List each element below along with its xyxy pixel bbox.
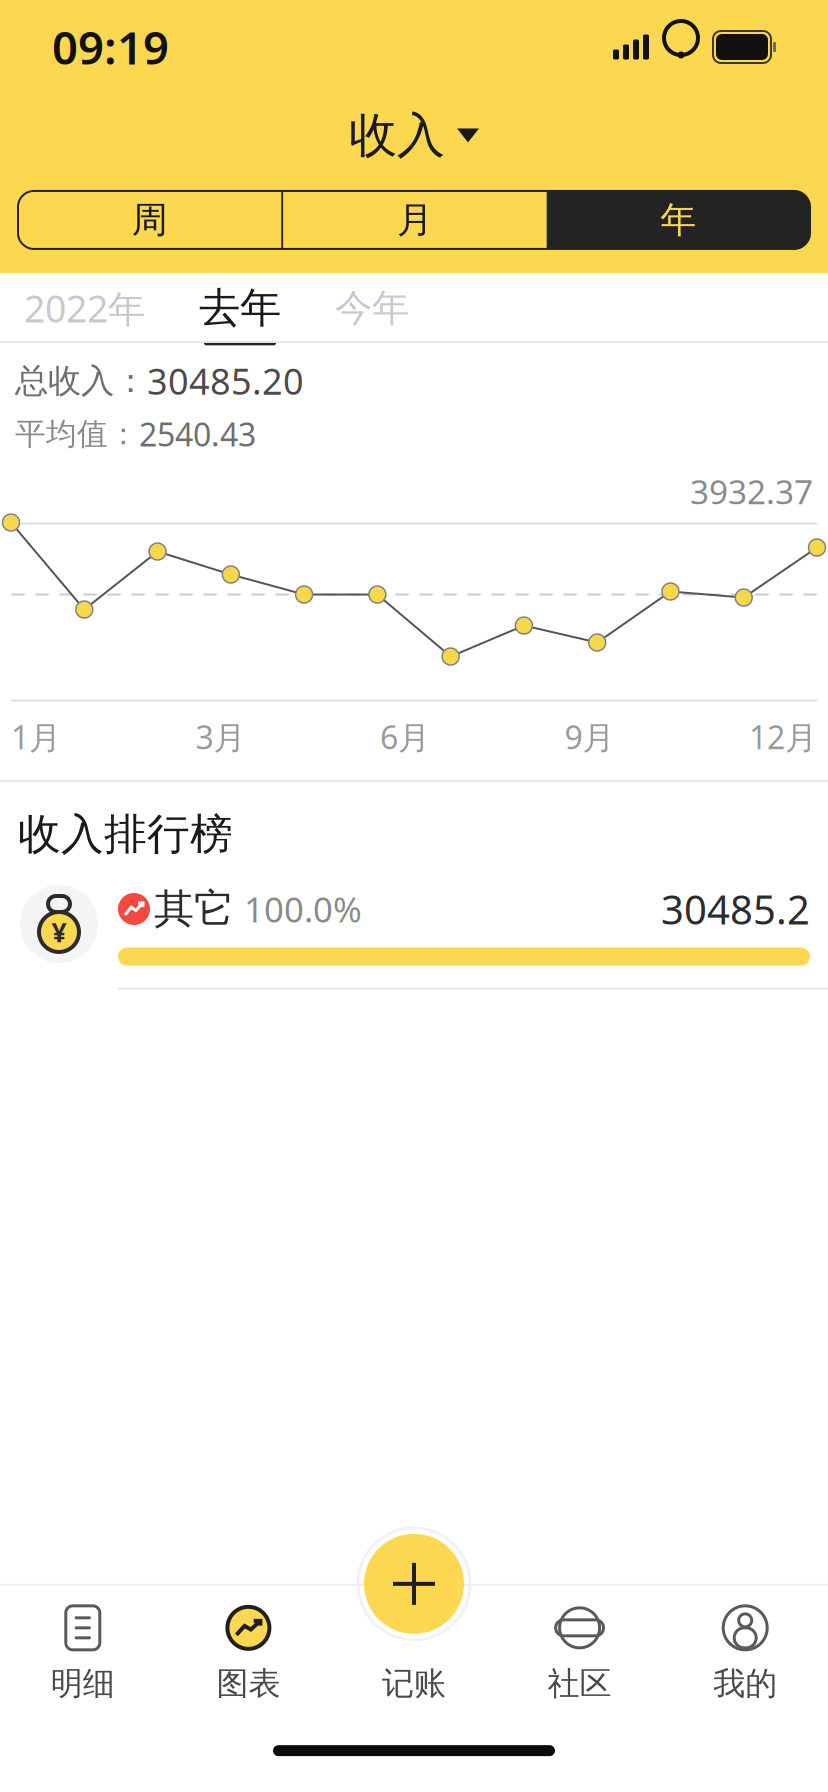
staticText: 我的 [713, 1664, 777, 1703]
staticText: 年 [660, 198, 696, 242]
staticText: 100.0% [244, 886, 362, 932]
staticText: 收入 [349, 106, 445, 165]
staticText: 3932.37 [690, 469, 813, 514]
staticText: 2022年 [24, 283, 145, 333]
button[interactable]: 今年 [325, 271, 419, 343]
staticText: ¥ [51, 914, 66, 950]
button[interactable]: 收入 [335, 98, 493, 173]
staticText: 去年 [199, 283, 281, 333]
staticText: 3月 [195, 715, 245, 758]
button[interactable]: 图表 [166, 1586, 331, 1711]
staticText: 明细 [51, 1664, 115, 1703]
staticText: 其它 [154, 884, 234, 933]
button[interactable]: 2022年 [14, 269, 155, 345]
staticText: 周 [132, 198, 168, 242]
staticText: 月 [397, 198, 433, 242]
button[interactable]: 月 [283, 191, 547, 249]
button[interactable]: 记账 [331, 1586, 497, 1711]
staticText: 2540.43 [139, 413, 256, 455]
staticText: 收入排行榜 [18, 808, 233, 860]
staticText: 记账 [382, 1664, 446, 1703]
button[interactable]: 年 [547, 191, 810, 249]
button[interactable]: 周 [18, 191, 281, 249]
staticText: 6月 [380, 715, 430, 758]
staticText: 图表 [216, 1664, 280, 1703]
staticText: 今年 [335, 285, 409, 331]
button[interactable]: 明细 [0, 1586, 166, 1711]
staticText: 1月 [11, 715, 61, 758]
staticText: 平均值： [15, 415, 139, 453]
button[interactable]: 我的 [662, 1586, 828, 1711]
button[interactable]: 记账 [358, 1528, 470, 1640]
staticText: 总收入： [15, 360, 147, 401]
staticText: 12月 [749, 715, 817, 758]
button[interactable]: 社区 [497, 1586, 662, 1711]
staticText: 09:19 [52, 17, 169, 77]
staticText: 30485.20 [147, 357, 304, 405]
staticText: 社区 [548, 1664, 612, 1703]
button[interactable]: ¥ [0, 882, 828, 989]
staticText: 30485.2 [661, 882, 810, 935]
button[interactable]: 去年 [189, 269, 291, 345]
staticText: 9月 [564, 715, 614, 758]
